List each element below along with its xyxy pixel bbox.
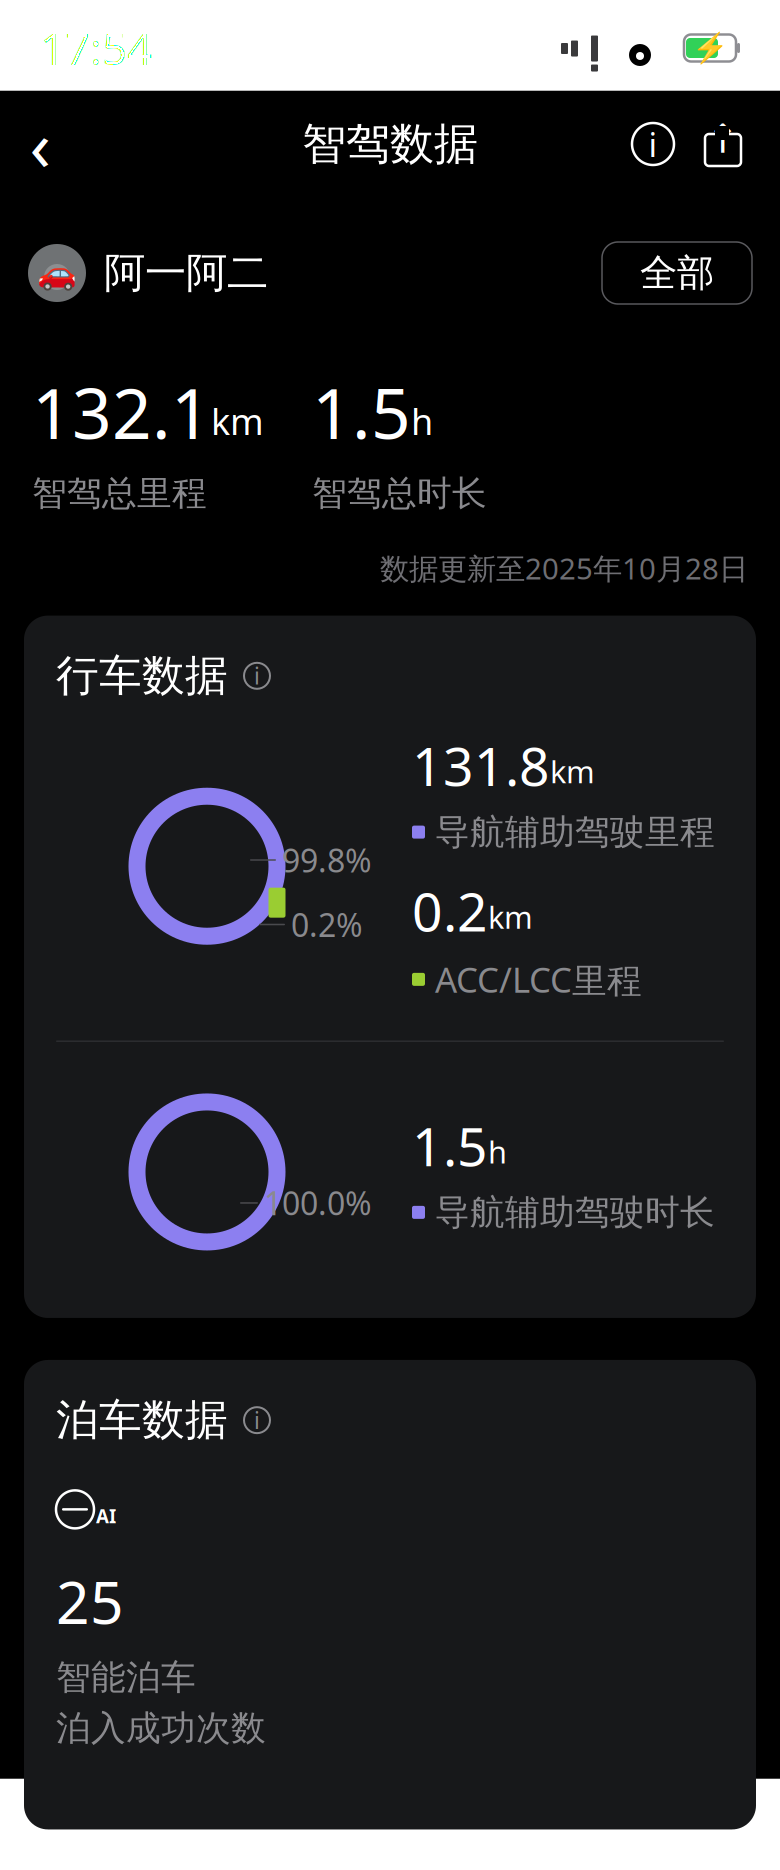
staticText: 智能泊车 [56,1656,196,1699]
staticText: ↑ [706,116,740,162]
staticText: 0.2% [291,903,363,946]
staticText: 17:54 [40,19,152,77]
button[interactable]: 行车数据说明 [240,659,274,693]
staticText: 智驾数据 [302,117,478,171]
staticText: i [254,1405,260,1435]
staticText: i [254,661,260,691]
staticText: ACC/LCC里程 [435,956,642,1002]
staticText: 1.5 [412,1110,488,1181]
staticText: 泊车数据 [56,1394,228,1446]
staticText: 100.0% [264,1182,372,1224]
staticText: 导航辅助驾驶时长 [435,1191,715,1234]
staticText: AI [96,1504,116,1528]
staticText: 25 [56,1562,124,1640]
staticText: km [488,896,533,937]
button[interactable]: 返回 [0,104,80,184]
staticText: 99.8% [282,839,372,881]
staticText: 131.8 [412,730,550,801]
button[interactable]: 分享 [688,109,758,179]
staticText: 0.2 [412,875,488,946]
staticText: km [550,751,595,792]
staticText: 导航辅助驾驶里程 [435,811,715,853]
staticText: 阿一阿二 [104,248,268,298]
button[interactable]: 泊车数据说明 [240,1403,274,1437]
staticText: 数据更新至2025年10月28日 [380,549,748,588]
staticText: 132.1 [32,366,211,458]
staticText: 泊入成功次数 [56,1707,266,1749]
staticText: 行车数据 [56,650,228,702]
staticText: 🚗 [37,255,77,291]
staticText: 全部 [640,250,714,296]
button[interactable]: 全部 [602,242,752,304]
staticText: ‹ [29,98,50,190]
button[interactable]: 信息 [618,109,688,179]
staticText: h [488,1131,507,1172]
staticText: 智驾总时长 [312,472,487,515]
staticText: h [411,397,433,445]
staticText: i [648,122,657,166]
staticText: 智驾总里程 [32,472,207,515]
staticText: 1.5 [312,366,411,458]
staticText: ⚡ [691,31,728,65]
staticText: km [211,397,264,445]
